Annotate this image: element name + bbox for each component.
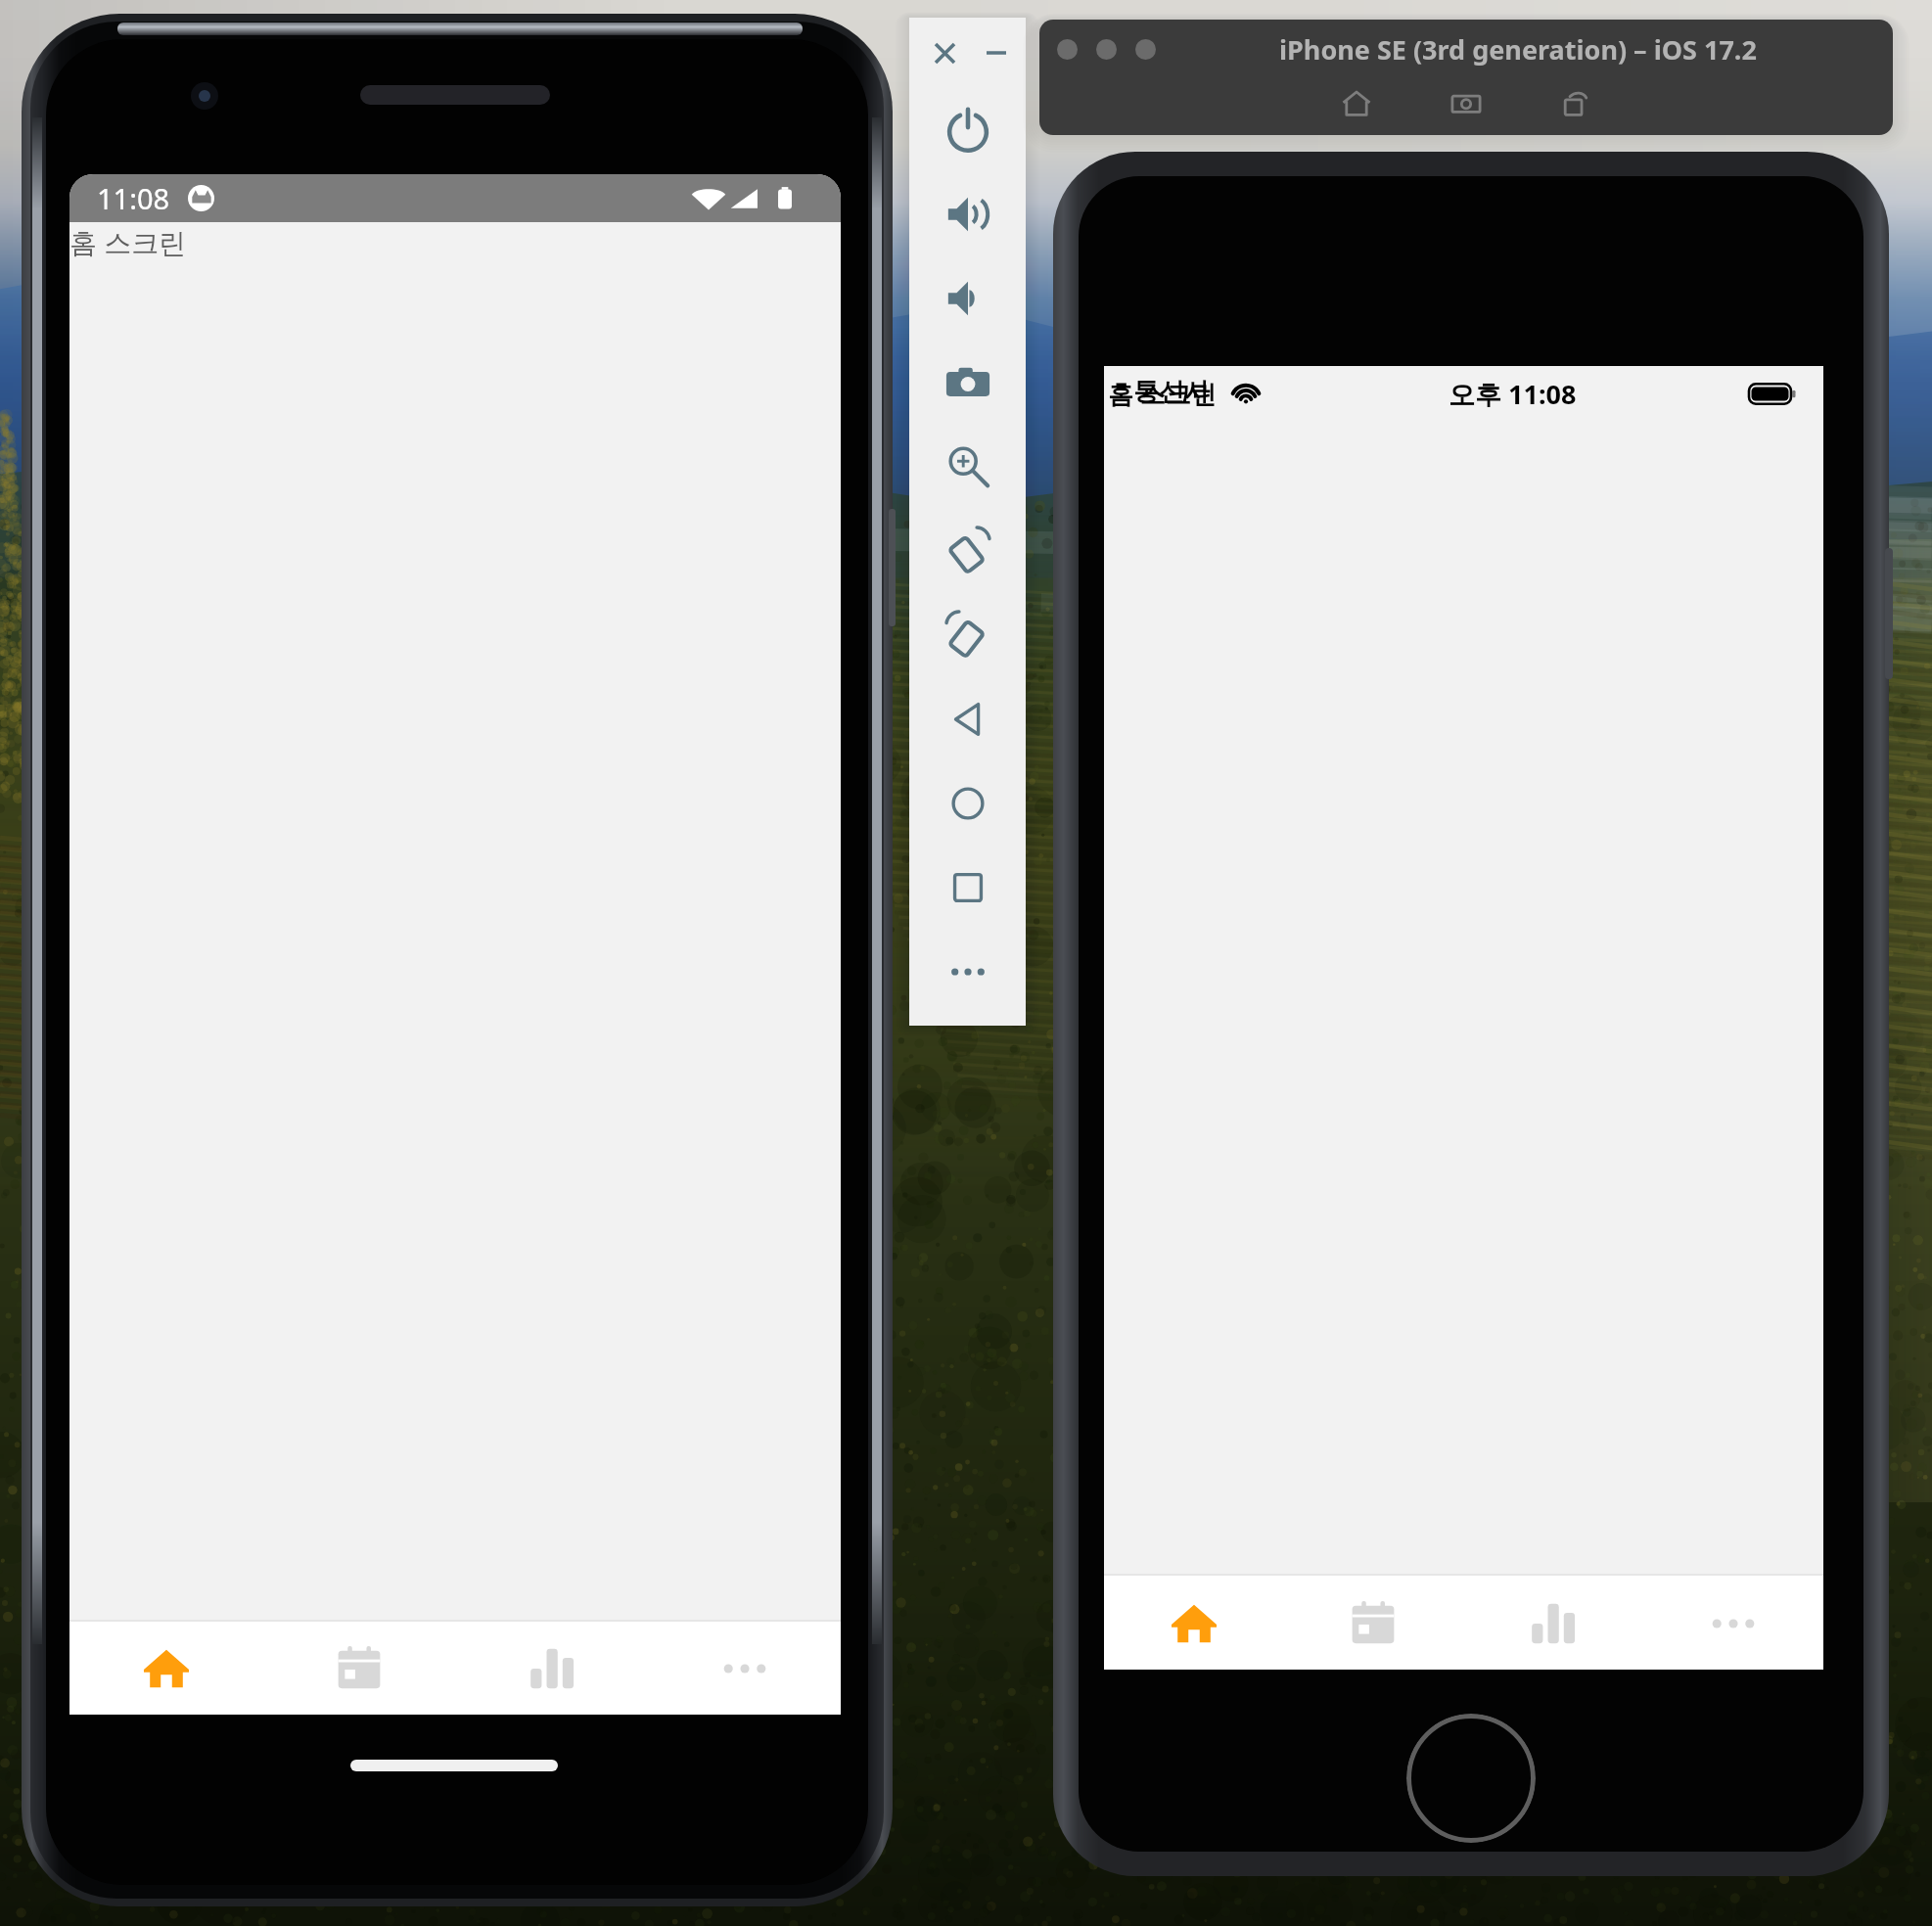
button[interactable]: Home	[909, 761, 1026, 846]
staticText: 오후 11:08	[1449, 376, 1577, 412]
button[interactable]: Back	[909, 677, 1026, 761]
button[interactable]: Window control	[1057, 39, 1078, 60]
button[interactable]: More	[1643, 1577, 1823, 1670]
button[interactable]: Rotate right	[909, 593, 1026, 677]
button[interactable]: Screen record	[1553, 81, 1598, 126]
button[interactable]: Calendar	[262, 1622, 455, 1715]
button[interactable]: Home	[1334, 81, 1379, 126]
button[interactable]: More options	[909, 932, 1026, 1012]
button[interactable]: Take screenshot	[909, 341, 1026, 425]
staticText: 홈 스크린	[69, 223, 187, 260]
button[interactable]: Home	[1104, 1577, 1283, 1670]
staticText: 홈 스크린	[1108, 376, 1217, 411]
button[interactable]: Screenshot	[1444, 81, 1489, 126]
button[interactable]: Volume up	[909, 172, 1026, 256]
button[interactable]: Zoom	[909, 425, 1026, 509]
button[interactable]: More	[648, 1622, 841, 1715]
button[interactable]: Calendar	[1283, 1577, 1463, 1670]
button[interactable]: Statistics	[455, 1622, 648, 1715]
button[interactable]: Home button	[1406, 1714, 1536, 1843]
staticText: 11:08	[97, 179, 170, 217]
button[interactable]: Close	[931, 39, 958, 67]
staticText: 통신사	[1133, 376, 1210, 408]
button[interactable]: Window control	[1135, 39, 1156, 60]
button[interactable]: Home	[69, 1622, 262, 1715]
button[interactable]: Volume down	[909, 256, 1026, 341]
button[interactable]: Overview	[909, 846, 1026, 930]
button[interactable]: Statistics	[1463, 1577, 1643, 1670]
button[interactable]: Rotate left	[909, 509, 1026, 593]
staticText: iPhone SE (3rd generation) – iOS 17.2	[1279, 31, 1757, 68]
button[interactable]: Minimize	[983, 39, 1010, 67]
button[interactable]: Window control	[1096, 39, 1117, 60]
button[interactable]: Power	[909, 88, 1026, 172]
